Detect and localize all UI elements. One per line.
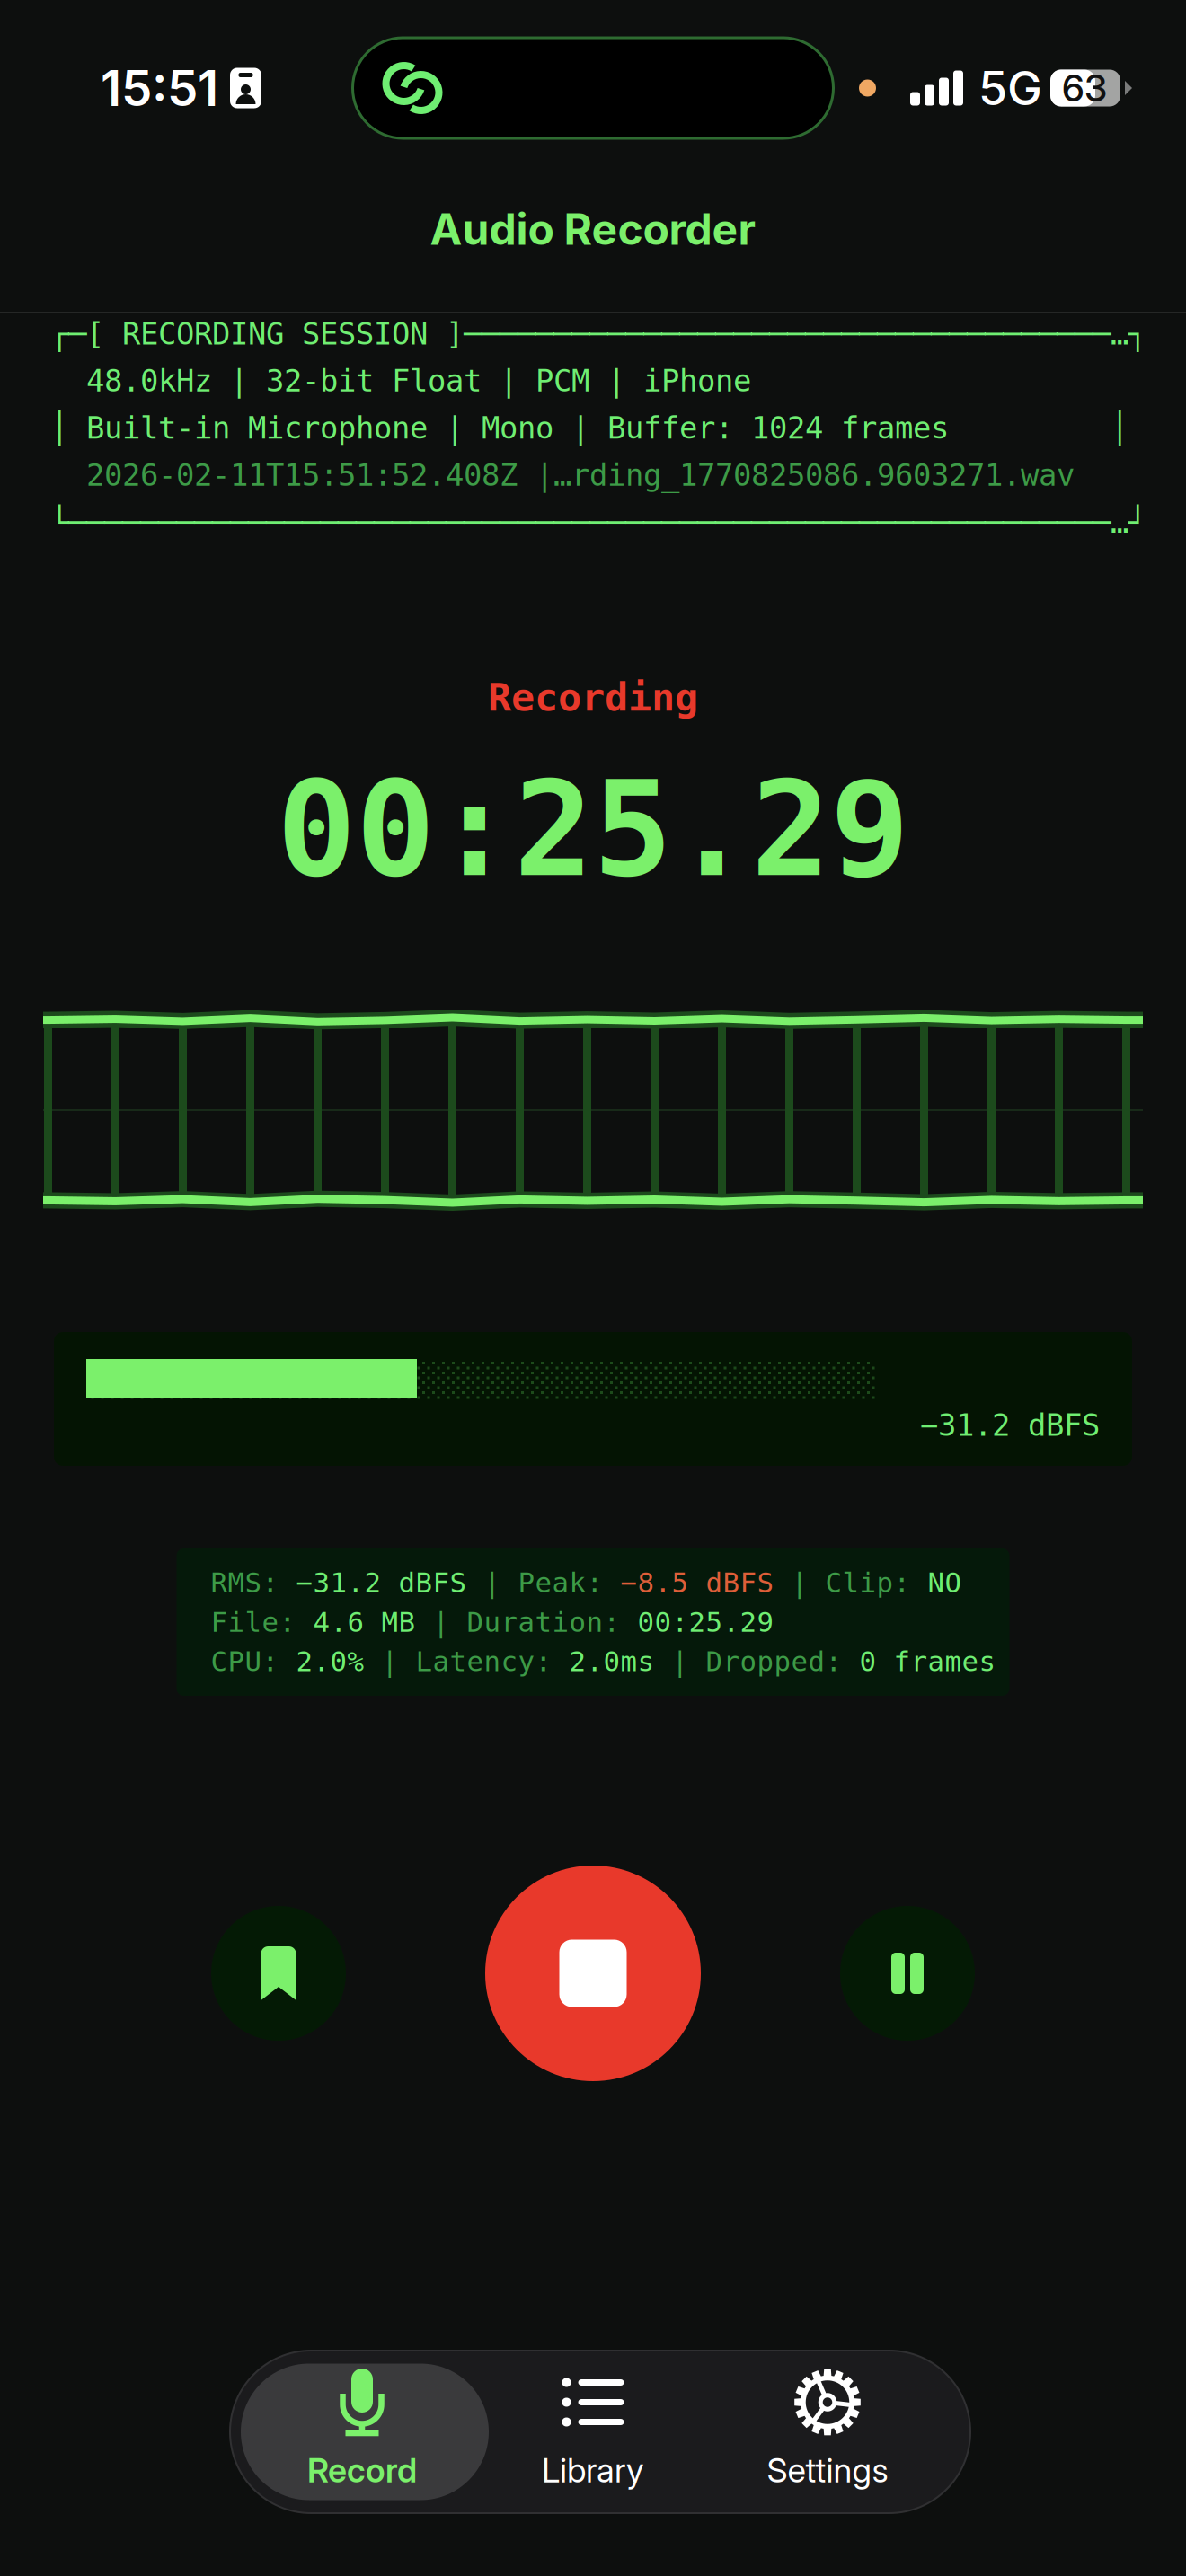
staticText: −31.2 dBFS	[296, 1567, 467, 1599]
button[interactable]: Pause recording	[840, 1906, 975, 2041]
staticText: |	[774, 1567, 825, 1599]
staticText: −31.2 dBFS	[920, 1407, 1100, 1443]
staticText: └───────────────────────────────────────…	[50, 505, 1146, 540]
staticText: |	[364, 1645, 416, 1678]
staticText: |	[467, 1567, 518, 1599]
staticText: 5G	[978, 60, 1042, 116]
button[interactable]: Record	[238, 2364, 486, 2500]
button[interactable]: Stop recording	[485, 1866, 701, 2081]
staticText: 4.6 MB	[313, 1606, 416, 1638]
staticText: CPU:	[211, 1645, 296, 1678]
staticText: Dropped:	[706, 1645, 859, 1678]
staticText: File:	[211, 1606, 313, 1638]
staticText: 15:51	[101, 58, 218, 118]
button[interactable]: Settings	[710, 2364, 945, 2500]
staticText: Recording	[488, 675, 698, 720]
staticText: 2026-02-11T15:51:52.408Z |…rding_1770825…	[50, 457, 1075, 493]
staticText: 0 frames	[859, 1645, 996, 1678]
staticText: 2.0%	[296, 1645, 364, 1678]
staticText: Record	[307, 2450, 417, 2490]
staticText: Settings	[767, 2450, 888, 2490]
staticText: Peak:	[518, 1567, 620, 1599]
button[interactable]: Library	[475, 2364, 711, 2500]
staticText: Clip:	[825, 1567, 928, 1599]
staticText: Latency:	[416, 1645, 569, 1678]
staticText: 2.0ms	[569, 1645, 655, 1678]
staticText: Duration:	[467, 1606, 637, 1638]
staticText: │ Built-in Microphone | Mono | Buffer: 1…	[50, 410, 1128, 446]
staticText: |	[416, 1606, 467, 1638]
staticText: RMS:	[211, 1567, 296, 1599]
button[interactable]: Add bookmark	[211, 1906, 346, 2041]
staticText: Audio Recorder	[430, 203, 756, 255]
staticText: |	[655, 1645, 706, 1678]
staticText: NO	[928, 1567, 962, 1599]
staticText: Library	[542, 2450, 644, 2490]
staticText: 48.0kHz | 32-bit Float | PCM | iPhone	[50, 363, 751, 399]
staticText: 63	[1062, 66, 1107, 110]
staticText: −8.5 dBFS	[620, 1567, 774, 1599]
staticText: 00:25.29	[277, 753, 909, 906]
staticText: ┌─[ RECORDING SESSION ]─────────────────…	[50, 316, 1146, 352]
staticText: 00:25.29	[637, 1606, 774, 1638]
